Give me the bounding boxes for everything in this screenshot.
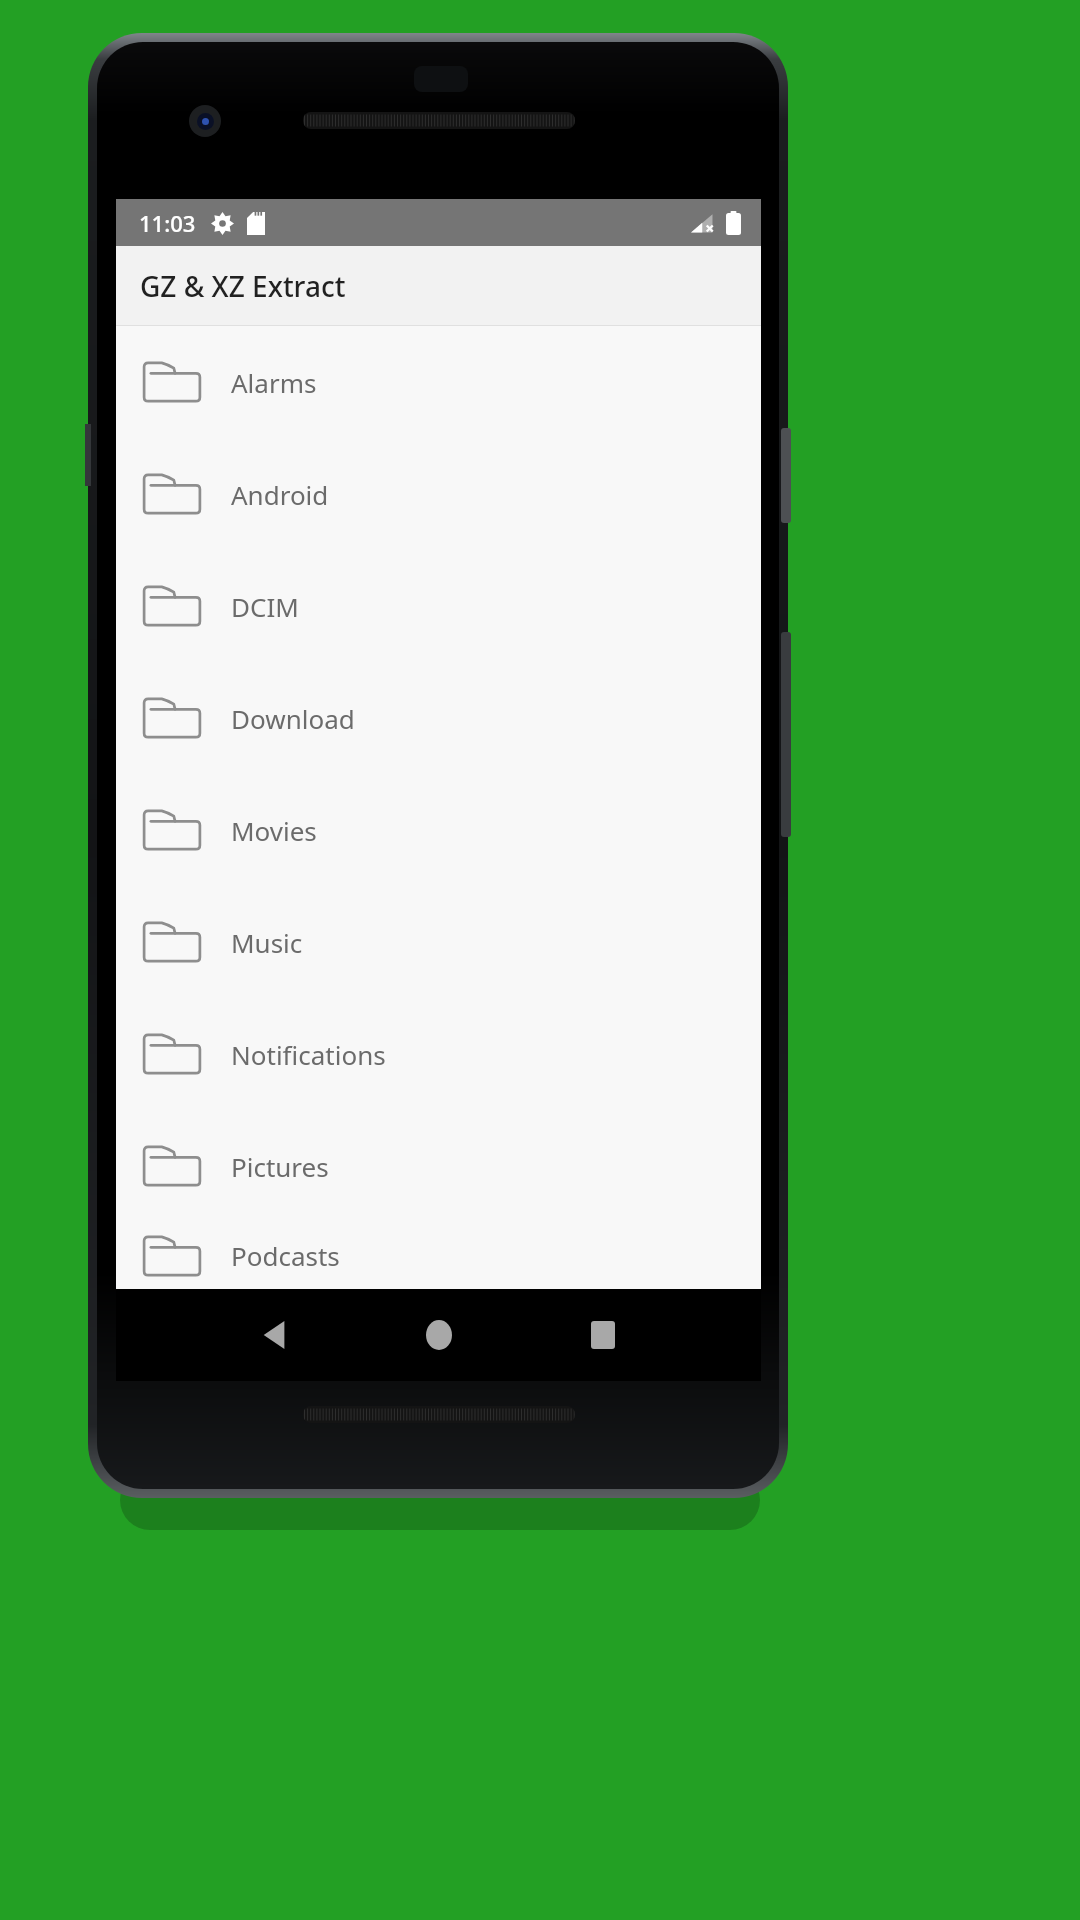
staticText: Notifications [231, 1037, 386, 1072]
button[interactable]: Home [397, 1293, 481, 1377]
button[interactable]: Download [116, 662, 761, 774]
staticText: 11:03 [139, 208, 196, 238]
button[interactable]: Movies [116, 774, 761, 886]
staticText: DCIM [231, 589, 299, 624]
staticText: Podcasts [231, 1238, 340, 1273]
button[interactable]: Alarms [116, 326, 761, 438]
button[interactable]: Recent apps [561, 1293, 645, 1377]
staticText: Android [231, 477, 329, 512]
staticText: Pictures [231, 1149, 329, 1184]
staticText: Movies [231, 813, 317, 848]
staticText: Download [231, 701, 355, 736]
button[interactable]: Android [116, 438, 761, 550]
staticText: Alarms [231, 365, 317, 400]
button[interactable]: Pictures [116, 1110, 761, 1222]
button[interactable]: Notifications [116, 998, 761, 1110]
button[interactable]: Music [116, 886, 761, 998]
button[interactable]: Podcasts [116, 1222, 761, 1289]
staticText: GZ & XZ Extract [140, 267, 346, 305]
staticText: Music [231, 925, 303, 960]
button[interactable]: Back [234, 1293, 318, 1377]
button[interactable]: DCIM [116, 550, 761, 662]
